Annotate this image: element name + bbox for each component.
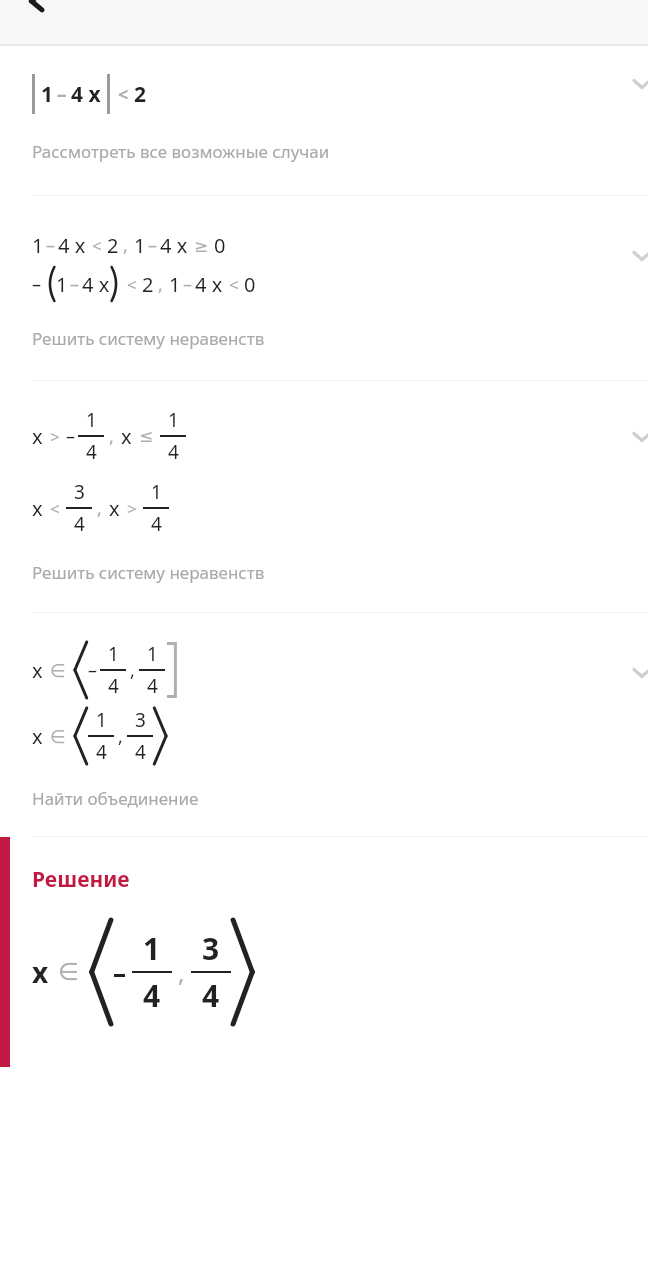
staticText: 1 xyxy=(147,641,158,667)
button[interactable]: Решение xyxy=(0,837,648,1067)
staticText: 1 xyxy=(86,407,97,433)
staticText: 4 xyxy=(96,739,107,765)
staticText: 4 xyxy=(86,439,97,465)
button[interactable]: Развернуть xyxy=(622,236,648,276)
staticText: x xyxy=(32,657,43,684)
staticText: > xyxy=(127,497,137,520)
staticText: 4 xyxy=(202,975,220,1016)
staticText: x xyxy=(121,423,132,450)
staticText: < xyxy=(229,273,239,296)
staticText: 1 xyxy=(96,707,107,733)
staticText: 0 xyxy=(244,271,256,298)
staticText: < xyxy=(50,497,60,520)
staticText: 1 xyxy=(151,479,162,505)
staticText: – xyxy=(183,272,192,297)
staticText: – xyxy=(46,233,55,258)
button[interactable]: Назад xyxy=(14,0,62,24)
staticText: Решение xyxy=(32,865,130,894)
staticText: – xyxy=(32,272,41,297)
staticText: Решить систему неравенств xyxy=(32,561,265,584)
staticText: 4 xyxy=(74,511,85,537)
staticText: 1 xyxy=(168,407,179,433)
staticText: 2 xyxy=(142,271,154,298)
staticText: – xyxy=(70,272,79,297)
staticText: , xyxy=(158,272,163,297)
staticText: 4 xyxy=(135,739,146,765)
staticText: ∈ xyxy=(50,726,66,747)
staticText: Решить систему неравенств xyxy=(32,327,265,350)
staticText: x xyxy=(32,423,43,450)
staticText: – xyxy=(113,955,127,990)
staticText: 4 x xyxy=(160,232,188,259)
staticText: Найти объединение xyxy=(32,787,199,810)
staticText: 2 xyxy=(134,80,147,109)
staticText: 0 xyxy=(214,232,226,259)
staticText: 3 xyxy=(74,479,85,505)
staticText: 3 xyxy=(135,707,146,733)
button[interactable]: x xyxy=(0,613,648,836)
staticText: 4 xyxy=(108,673,119,699)
staticText: > xyxy=(50,425,60,448)
staticText: 4 xyxy=(168,439,179,465)
staticText: x xyxy=(32,723,43,750)
staticText: 1 xyxy=(56,271,68,298)
staticText: ≤ xyxy=(139,426,154,446)
staticText: 4 x xyxy=(71,80,101,109)
staticText: 1 xyxy=(108,641,119,667)
staticText: ≥ xyxy=(194,236,209,256)
staticText: , xyxy=(97,496,102,521)
button[interactable]: 1 xyxy=(0,196,648,380)
staticText: 4 x xyxy=(58,232,86,259)
staticText: 4 xyxy=(147,673,158,699)
button[interactable]: x xyxy=(0,381,648,612)
staticText: 4 xyxy=(151,511,162,537)
staticText: 1 xyxy=(32,232,44,259)
staticText: 4 x xyxy=(82,271,110,298)
staticText: , xyxy=(123,233,128,258)
button[interactable]: 1 xyxy=(0,46,648,195)
staticText: < xyxy=(127,273,137,296)
staticText: ∈ xyxy=(58,958,79,986)
staticText: 3 xyxy=(202,928,220,969)
staticText: Рассмотреть все возможные случаи xyxy=(32,140,330,163)
staticText: < xyxy=(118,82,129,107)
staticText: – xyxy=(66,424,75,449)
staticText: 4 x xyxy=(195,271,223,298)
staticText: x xyxy=(109,495,120,522)
button[interactable]: Развернуть xyxy=(622,64,648,104)
staticText: , xyxy=(178,956,185,989)
staticText: 1 xyxy=(169,271,181,298)
staticText: 2 xyxy=(107,232,119,259)
staticText: ∈ xyxy=(50,660,66,681)
staticText: 1 xyxy=(41,80,54,109)
staticText: , xyxy=(130,658,135,683)
staticText: , xyxy=(109,424,114,449)
staticText: – xyxy=(148,233,157,258)
staticText: 1 xyxy=(134,232,146,259)
staticText: x xyxy=(32,953,49,991)
staticText: 1 xyxy=(143,928,161,969)
button[interactable]: Развернуть xyxy=(622,653,648,693)
staticText: – xyxy=(57,81,67,107)
staticText: , xyxy=(118,724,123,749)
staticText: 4 xyxy=(143,975,161,1016)
staticText: – xyxy=(88,658,97,683)
button[interactable]: Развернуть xyxy=(622,417,648,457)
staticText: x xyxy=(32,495,43,522)
staticText: < xyxy=(92,234,102,257)
